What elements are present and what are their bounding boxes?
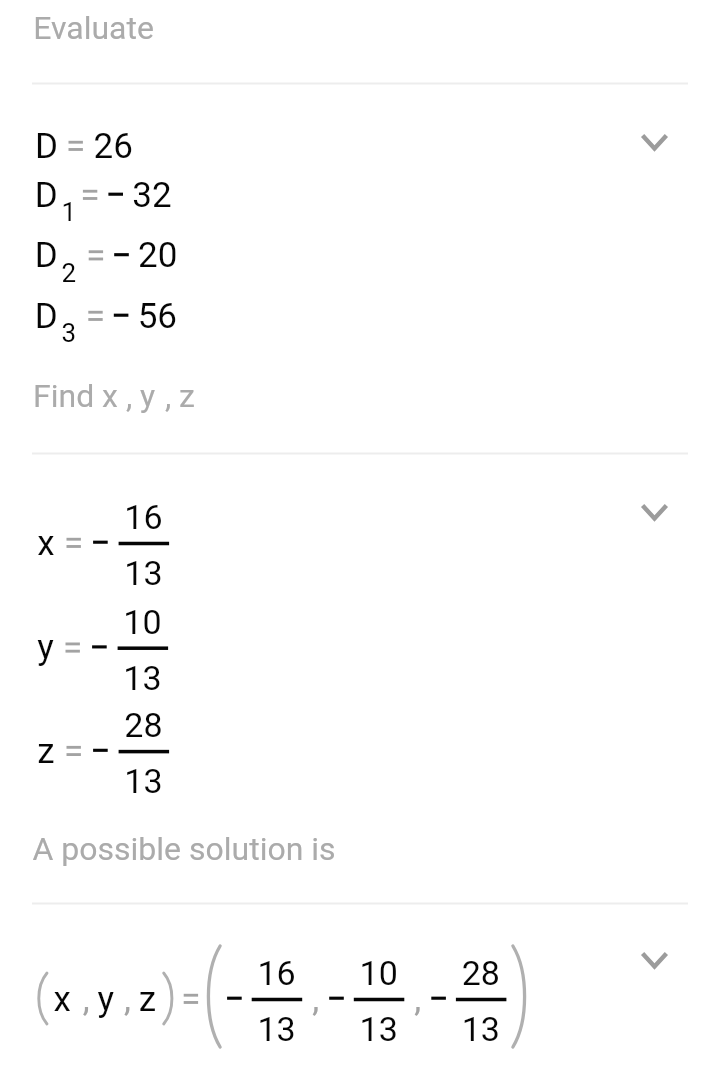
button[interactable]: Determinants D = 26, D1 = -32, D2 = -20,… <box>0 85 720 453</box>
button[interactable]: Collapse evaluate step <box>626 114 682 170</box>
button[interactable]: Evaluate step <box>0 0 720 83</box>
button[interactable]: Collapse solution step <box>626 932 682 988</box>
button[interactable]: Collapse solve step <box>626 484 682 540</box>
button[interactable]: Solution x = -16/13, y = -10/13, z = -28… <box>0 455 720 902</box>
button[interactable]: A possible solution is (x , y , z) = (-1… <box>0 905 720 1075</box>
